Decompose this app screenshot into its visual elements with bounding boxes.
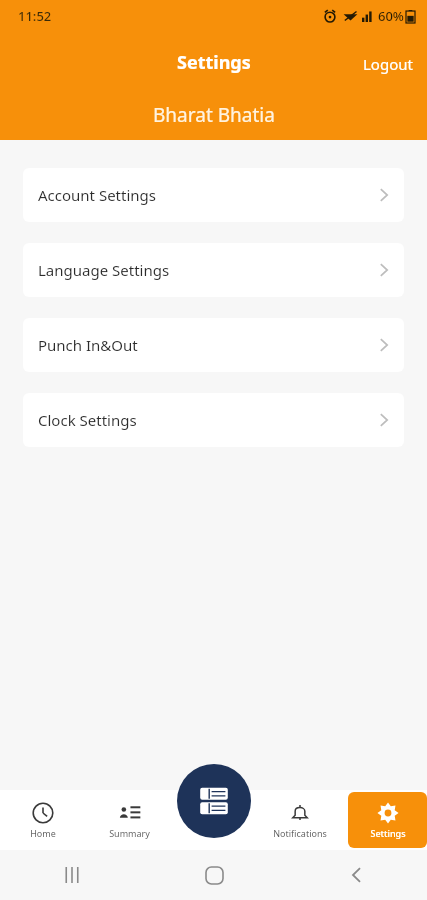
button[interactable]: Recent apps — [0, 850, 143, 900]
button[interactable]: Records — [177, 764, 251, 838]
staticText: Bharat Bhatia — [153, 102, 275, 128]
button[interactable]: Language Settings — [23, 243, 404, 297]
staticText: Clock Settings — [38, 410, 137, 430]
staticText: Language Settings — [38, 260, 170, 280]
button[interactable]: Summary — [86, 790, 172, 850]
button[interactable]: Account Settings — [23, 168, 404, 222]
staticText: 11:52 — [18, 7, 52, 25]
staticText: Logout — [363, 54, 413, 74]
button[interactable]: Settings — [348, 792, 427, 848]
staticText: Home — [30, 827, 56, 839]
staticText: Notifications — [273, 827, 327, 839]
button[interactable]: Home — [0, 790, 86, 850]
button[interactable]: Back — [285, 850, 427, 900]
button[interactable]: Punch In&Out — [23, 318, 404, 372]
staticText: Settings — [370, 827, 406, 839]
button[interactable]: Notifications — [257, 790, 342, 850]
staticText: Settings — [177, 50, 251, 75]
staticText: Account Settings — [38, 185, 156, 205]
button[interactable]: Home — [143, 850, 285, 900]
staticText: Punch In&Out — [38, 335, 138, 355]
staticText: Summary — [109, 827, 150, 839]
staticText: 60% — [378, 7, 404, 25]
button[interactable]: Clock Settings — [23, 393, 404, 447]
button[interactable]: Logout — [349, 50, 427, 78]
